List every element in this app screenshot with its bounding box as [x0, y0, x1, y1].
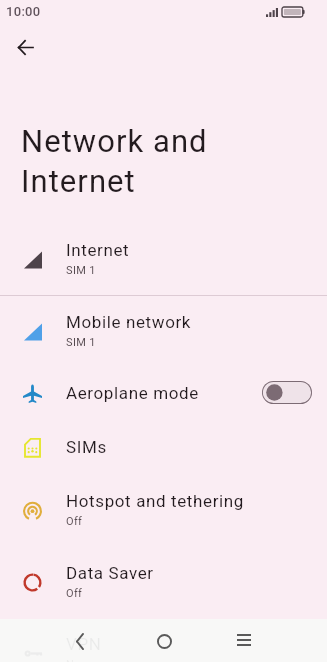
- staticText: VPN: [66, 634, 102, 654]
- staticText: SIM 1: [66, 336, 96, 349]
- button[interactable]: Mobile network: [0, 296, 327, 367]
- staticText: Mobile network: [66, 312, 192, 332]
- staticText: Off: [66, 587, 83, 600]
- staticText: Data Saver: [66, 563, 154, 583]
- staticText: Aeroplane mode: [66, 383, 199, 403]
- button[interactable]: Internet: [0, 224, 327, 295]
- staticText: Off: [66, 515, 83, 528]
- button[interactable]: VPN: [0, 618, 327, 662]
- staticText: Internet: [66, 240, 130, 260]
- button[interactable]: Data Saver: [0, 547, 327, 618]
- button[interactable]: Home: [136, 623, 192, 659]
- staticText: Network and Internet: [21, 123, 208, 199]
- button[interactable]: Back: [7, 29, 44, 66]
- staticText: SIM 1: [66, 264, 96, 277]
- button[interactable]: Aeroplane mode: [0, 366, 327, 421]
- button[interactable]: Aeroplane mode: [262, 381, 312, 404]
- button[interactable]: Back: [52, 623, 108, 659]
- button[interactable]: SIMs: [0, 420, 327, 475]
- staticText: SIMs: [66, 437, 107, 457]
- button[interactable]: Recent apps: [216, 622, 272, 658]
- button[interactable]: Hotspot and tethering: [0, 475, 327, 546]
- staticText: 10:00: [6, 4, 41, 19]
- staticText: Hotspot and tethering: [66, 491, 244, 511]
